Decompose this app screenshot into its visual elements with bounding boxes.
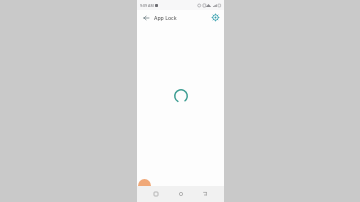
staticText: 9:09 AM [140,3,154,8]
button[interactable]: Home [175,188,187,200]
staticText: App Lock [154,14,177,21]
button[interactable]: Back [199,188,211,200]
button[interactable]: Settings [210,12,220,22]
button[interactable]: Recent apps [150,188,162,200]
button[interactable]: Back [141,13,150,22]
